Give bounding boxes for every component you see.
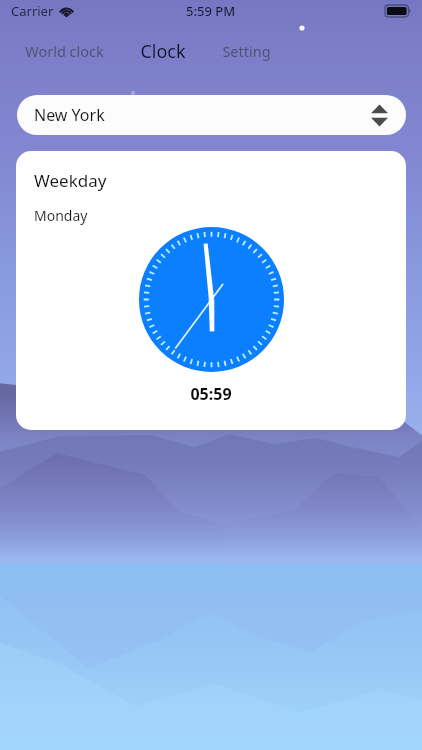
staticText: Carrier xyxy=(11,2,54,20)
button[interactable]: New York xyxy=(17,95,406,135)
staticText: 5:59 PM xyxy=(186,2,236,20)
other: Change city xyxy=(371,103,388,128)
button[interactable]: World clock xyxy=(7,33,122,69)
staticText: Weekday xyxy=(34,169,107,192)
staticText: Clock xyxy=(140,39,186,64)
button[interactable]: Clock xyxy=(122,33,204,69)
staticText: Setting xyxy=(222,41,271,61)
button[interactable]: Setting xyxy=(204,33,289,69)
staticText: New York xyxy=(34,104,105,126)
staticText: World clock xyxy=(25,41,104,61)
staticText: 05:59 xyxy=(16,383,406,405)
staticText: Monday xyxy=(34,206,88,225)
